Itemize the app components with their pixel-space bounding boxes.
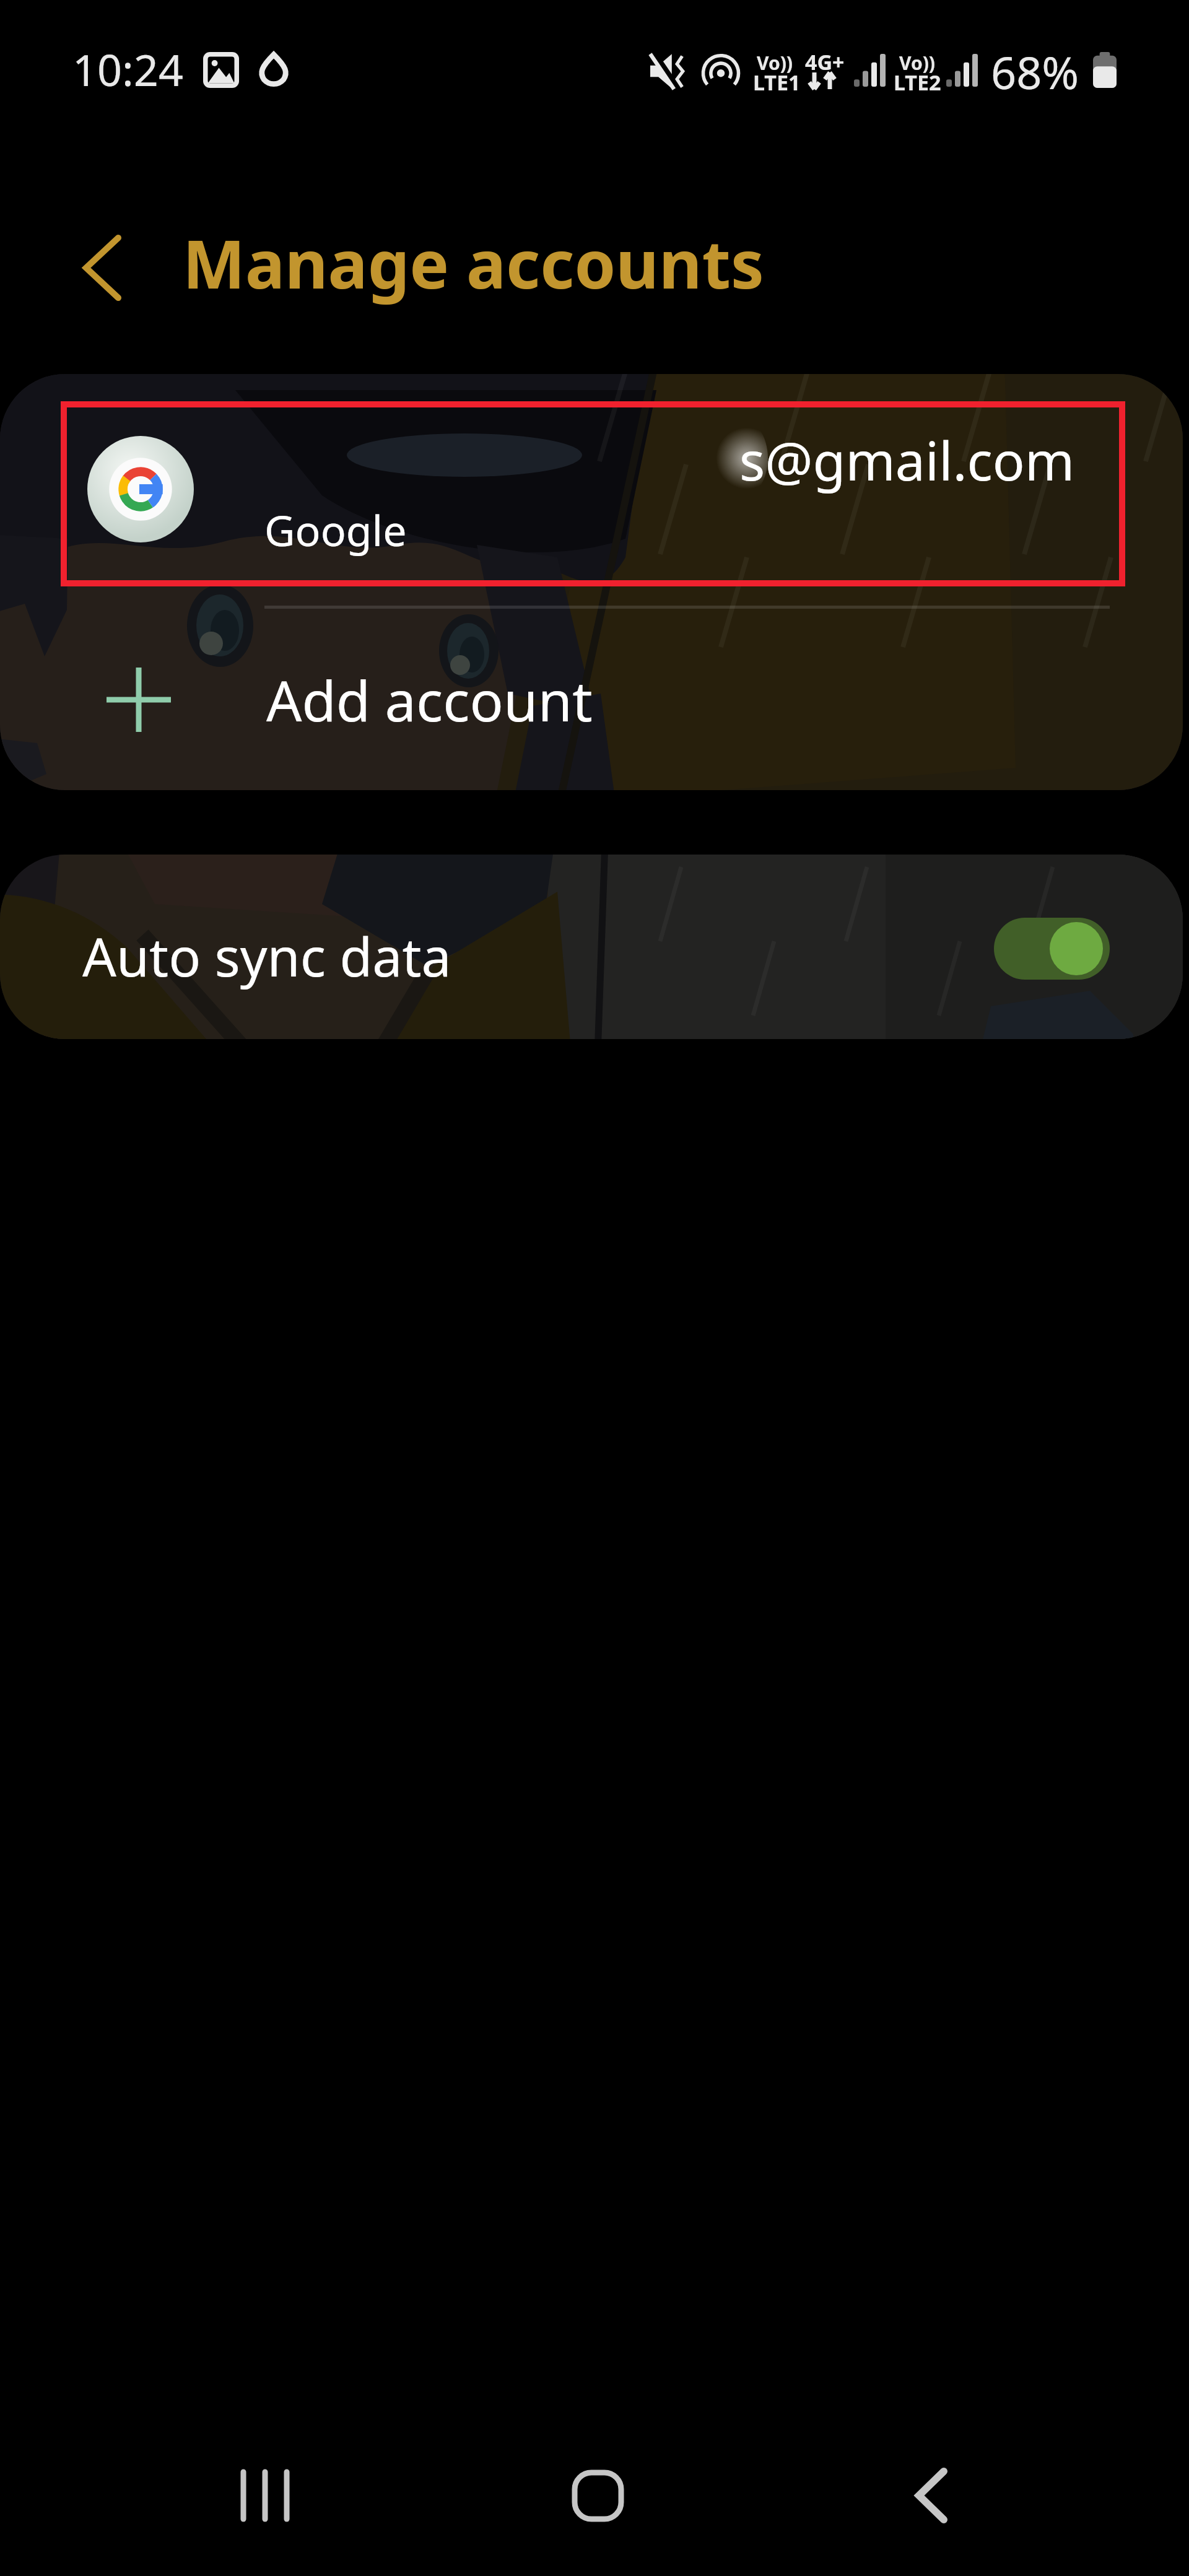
button[interactable]: Home [523,2440,672,2551]
staticText: Add account [266,662,593,738]
staticText: Google [264,501,407,559]
staticText: Auto sync data [82,920,451,992]
staticText: Vo)) [757,50,793,76]
staticText: 4G+ [805,48,845,76]
button[interactable]: Add account [0,608,1183,790]
button[interactable]: Google [0,406,1183,606]
staticText: Vo)) [899,50,935,76]
button[interactable]: Back [857,2440,1006,2551]
button[interactable] [994,918,1110,980]
staticText: s@gmail.com [739,424,1075,496]
button[interactable]: Back [59,224,146,311]
button[interactable]: Auto sync data [0,855,1183,1039]
staticText: 68% [991,41,1079,102]
staticText: LTE1 [753,68,801,97]
staticText: Manage accounts [183,218,764,308]
staticText: 10:24 [72,40,183,98]
staticText: LTE2 [894,68,941,97]
button[interactable]: Recent apps [191,2440,339,2551]
